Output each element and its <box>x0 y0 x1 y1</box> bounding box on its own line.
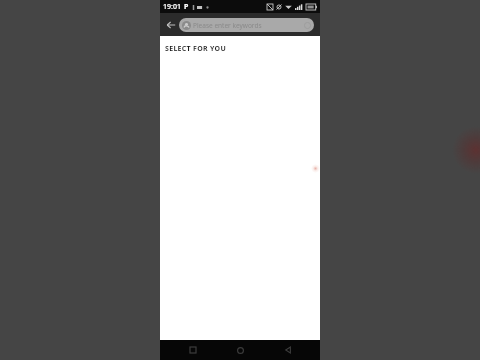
staticText: Please enter keywords <box>193 21 304 30</box>
button[interactable]: Back <box>162 16 179 33</box>
staticText: P <box>184 2 189 12</box>
staticText: SELECT FOR YOU <box>165 44 227 54</box>
button[interactable]: Recent apps <box>178 340 208 360</box>
button[interactable]: Back <box>273 340 303 360</box>
button[interactable]: Please enter keywords <box>179 18 314 32</box>
button[interactable]: Home <box>225 340 255 360</box>
staticText: 19:01 <box>163 2 181 12</box>
